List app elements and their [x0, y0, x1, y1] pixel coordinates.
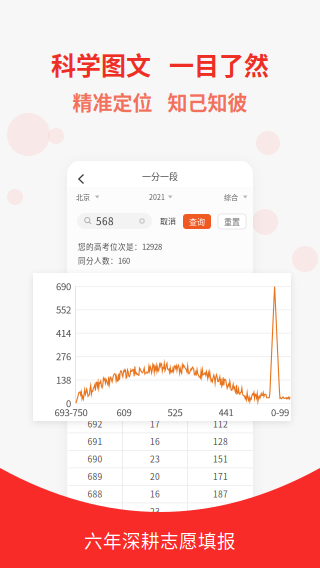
staticText: 568: [96, 214, 114, 228]
staticText: 同分人数：160: [78, 255, 130, 266]
staticText: 525: [167, 405, 182, 419]
button[interactable]: 重置: [218, 214, 246, 229]
staticText: 691: [87, 435, 102, 447]
staticText: 取消: [160, 215, 176, 227]
staticText: 综合: [224, 192, 238, 202]
staticText: 科学图文 一目了然: [51, 46, 269, 82]
staticText: 23: [150, 453, 160, 465]
staticText: 查询: [189, 216, 205, 227]
staticText: 您的高考位次是：12928: [78, 241, 162, 252]
staticText: 689: [87, 470, 102, 482]
staticText: 0: [66, 396, 71, 410]
button[interactable]: 北京: [76, 191, 100, 203]
staticText: 552: [56, 302, 71, 316]
staticText: 112: [213, 418, 228, 430]
staticText: 16: [150, 435, 160, 447]
staticText: 690: [87, 453, 102, 465]
button[interactable]: 综合: [224, 191, 248, 203]
staticText: 693-750: [54, 405, 87, 419]
staticText: 276: [56, 349, 71, 363]
staticText: 688: [87, 488, 102, 500]
staticText: 151: [213, 453, 228, 465]
staticText: 138: [56, 373, 71, 386]
staticText: 2021: [149, 192, 165, 202]
staticText: 重置: [224, 216, 240, 227]
staticText: 16: [150, 488, 160, 500]
staticText: 128: [213, 435, 228, 447]
staticText: 北京: [76, 192, 90, 202]
staticText: 23: [150, 505, 160, 517]
button[interactable]: 取消: [159, 213, 177, 229]
staticText: 一分一段: [142, 169, 178, 182]
staticText: 187: [213, 488, 228, 500]
staticText: 690: [56, 279, 71, 293]
staticText: 441: [218, 405, 233, 419]
button[interactable]: 2021: [149, 191, 173, 203]
staticText: 692: [87, 418, 102, 430]
staticText: 609: [116, 405, 131, 419]
staticText: 17: [150, 418, 160, 430]
staticText: 414: [56, 326, 71, 340]
button[interactable]: Back: [73, 169, 90, 189]
staticText: 171: [213, 470, 228, 482]
staticText: 六年深耕志愿填报: [84, 527, 236, 553]
button[interactable]: 查询: [183, 214, 211, 229]
staticText: 精准定位 知己知彼: [72, 87, 247, 116]
staticText: 0-99: [271, 405, 289, 419]
staticText: 20: [150, 470, 160, 482]
